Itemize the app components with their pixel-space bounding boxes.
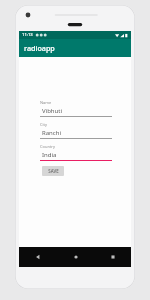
staticText: India [42, 151, 57, 159]
staticText: Vibhuti [42, 107, 62, 115]
staticText: City [40, 122, 48, 127]
staticText: Country [40, 144, 56, 149]
staticText: Ranchi [42, 129, 61, 137]
staticText: 11:13 [22, 32, 33, 38]
button[interactable]: Recent apps [94, 247, 131, 267]
button[interactable]: Country [40, 144, 112, 161]
button[interactable]: Name [40, 100, 112, 117]
button[interactable]: SAVE [42, 166, 64, 176]
button[interactable]: Back [19, 247, 57, 267]
staticText: radioapp [24, 43, 55, 53]
button[interactable]: City [40, 122, 112, 139]
button[interactable]: radioapp [19, 39, 131, 57]
button[interactable]: Home [57, 247, 94, 267]
staticText: Name [40, 100, 52, 105]
staticText: SAVE [48, 168, 59, 174]
